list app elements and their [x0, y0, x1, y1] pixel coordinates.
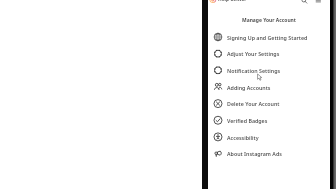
button[interactable]: Menu [311, 0, 323, 5]
staticText: Adjust Your Settings [227, 50, 280, 57]
button[interactable]: Help Center [208, 0, 330, 5]
staticText: Accessibility [227, 134, 259, 141]
staticText: Notification Settings [227, 67, 281, 74]
button[interactable]: About Instagram Ads [208, 145, 330, 162]
button[interactable]: Signing Up and Getting Started [208, 29, 330, 46]
button[interactable]: Adding Accounts [208, 79, 330, 96]
staticText: Verified Badges [227, 117, 268, 124]
button[interactable]: Search [298, 0, 310, 5]
staticText: Adding Accounts [227, 84, 271, 91]
button[interactable]: Delete Your Account [208, 95, 330, 112]
button[interactable]: Verified Badges [208, 112, 330, 129]
staticText: Manage Your Account [242, 17, 296, 24]
staticText: Signing Up and Getting Started [227, 34, 308, 41]
staticText: Help Center [218, 0, 247, 3]
button[interactable]: Accessibility [208, 129, 330, 146]
staticText: Delete Your Account [227, 100, 280, 107]
staticText: About Instagram Ads [227, 150, 282, 157]
button[interactable]: Adjust Your Settings [208, 45, 330, 62]
button[interactable]: Notification Settings [208, 62, 330, 79]
